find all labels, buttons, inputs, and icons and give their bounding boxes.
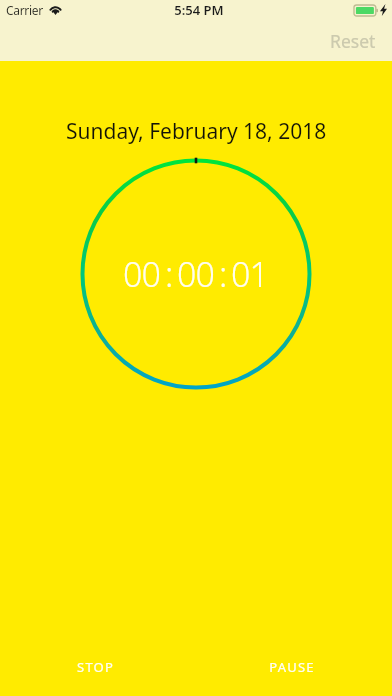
staticText: 00 <box>177 251 215 297</box>
other: Charging <box>380 4 387 16</box>
staticText: : <box>219 251 227 297</box>
staticText: Sunday, February 18, 2018 <box>66 117 327 146</box>
staticText: Reset <box>330 29 376 53</box>
staticText: STOP <box>77 658 114 676</box>
button[interactable]: PAUSE <box>191 652 392 682</box>
staticText: 01 <box>231 251 269 297</box>
staticText: PAUSE <box>269 658 315 676</box>
other: Battery <box>354 5 378 16</box>
staticText: Carrier <box>6 2 43 18</box>
staticText: 00 <box>123 251 161 297</box>
other: Wi-Fi signal <box>49 5 62 15</box>
staticText: : <box>165 251 173 297</box>
staticText: 5:54 PM <box>174 1 224 19</box>
button[interactable]: STOP <box>0 652 191 682</box>
button[interactable]: Reset <box>314 25 392 61</box>
